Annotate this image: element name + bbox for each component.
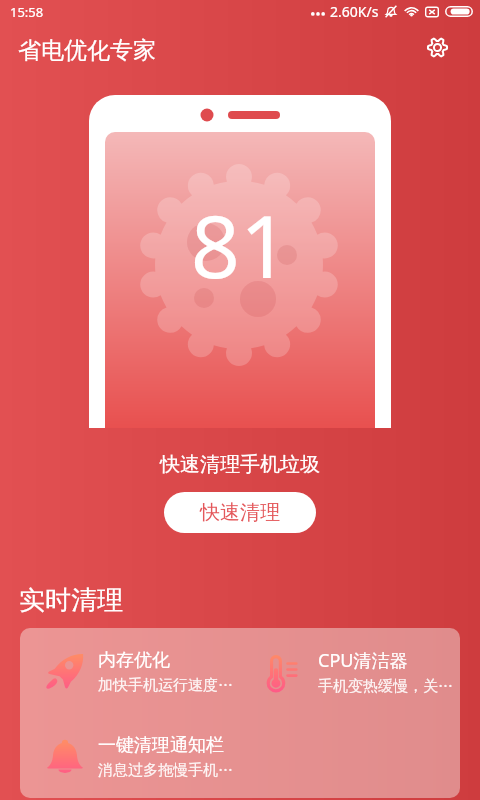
staticText: 快速清理手机垃圾: [0, 452, 480, 477]
staticText: 内存优化: [98, 649, 170, 672]
staticText: 加快手机运行速度，…: [98, 676, 240, 695]
staticText: 手机变热缓慢，关闭…: [318, 677, 460, 696]
staticText: 15:58: [10, 3, 44, 21]
staticText: CPU清洁器: [318, 648, 408, 673]
staticText: 快速清理: [200, 500, 280, 525]
button[interactable]: Settings: [420, 30, 454, 64]
staticText: 省电优化专家: [18, 36, 156, 65]
staticText: 实时清理: [19, 584, 123, 617]
staticText: 2.60K/s: [330, 2, 379, 21]
staticText: 81: [0, 186, 480, 303]
staticText: 一键清理通知栏: [98, 734, 224, 757]
button[interactable]: CPU清洁器: [240, 628, 460, 716]
staticText: 消息过多拖慢手机速…: [98, 761, 240, 780]
button[interactable]: 一键清理通知栏: [20, 716, 240, 798]
button[interactable]: 快速清理: [164, 492, 316, 533]
button[interactable]: 内存优化: [20, 628, 240, 716]
